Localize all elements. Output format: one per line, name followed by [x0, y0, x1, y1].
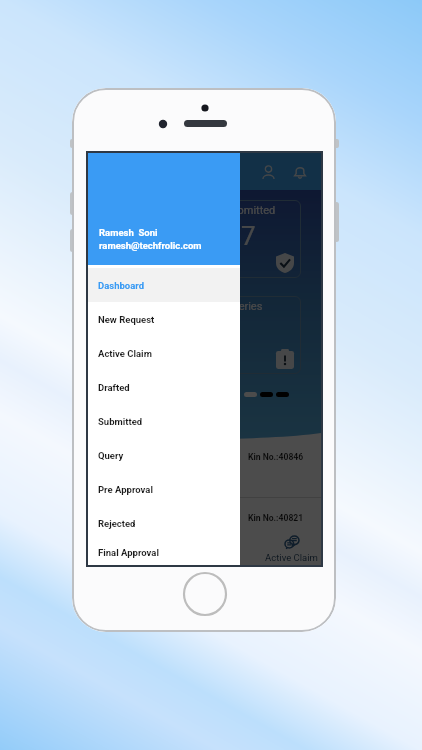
staticText: Dashboard	[104, 552, 150, 563]
staticText: Final Approval	[98, 547, 159, 558]
staticText: Queries	[225, 300, 263, 313]
button[interactable]: Dashboard	[88, 268, 240, 302]
staticText: Ramesh Soni	[99, 227, 158, 238]
staticText: Submitted	[98, 416, 143, 427]
staticText: New Request	[98, 314, 155, 325]
button[interactable]: Submitted	[215, 200, 301, 278]
button[interactable]: Notifications	[286, 158, 314, 186]
staticText: Active Claim	[98, 348, 152, 359]
staticText: ramesh@techfrolic.com	[99, 240, 202, 251]
button[interactable]: Kin No.:40821	[88, 498, 321, 558]
button[interactable]: Drafted	[88, 370, 240, 404]
staticText: Drafted	[98, 382, 130, 393]
staticText: 7	[241, 221, 256, 251]
staticText: Active Claim	[265, 552, 318, 563]
button[interactable]: Active Claim	[88, 336, 240, 370]
button[interactable]: New Request	[88, 302, 240, 336]
button[interactable]: Final Approval	[88, 540, 240, 565]
button[interactable]: Queries	[215, 296, 301, 374]
button[interactable]: Pre Approval	[88, 472, 240, 506]
staticText: Pre Approval	[98, 484, 153, 495]
button[interactable]: Profile	[254, 158, 282, 186]
staticText: Query	[98, 450, 124, 461]
button[interactable]: Query	[88, 438, 240, 472]
staticText: Submitted	[225, 204, 276, 217]
button[interactable]: Kin No.:40846	[88, 437, 321, 497]
staticText: Dashboard	[98, 280, 144, 291]
staticText: Rejected	[98, 518, 136, 529]
button[interactable]: Active Claim	[230, 527, 336, 563]
button[interactable]: Dashboard	[96, 527, 158, 563]
button[interactable]: Rejected	[88, 506, 240, 540]
button[interactable]: Submitted	[88, 404, 240, 438]
staticText: Kin No.:40846	[248, 452, 304, 462]
staticText: Kin No.:40821	[248, 513, 304, 523]
